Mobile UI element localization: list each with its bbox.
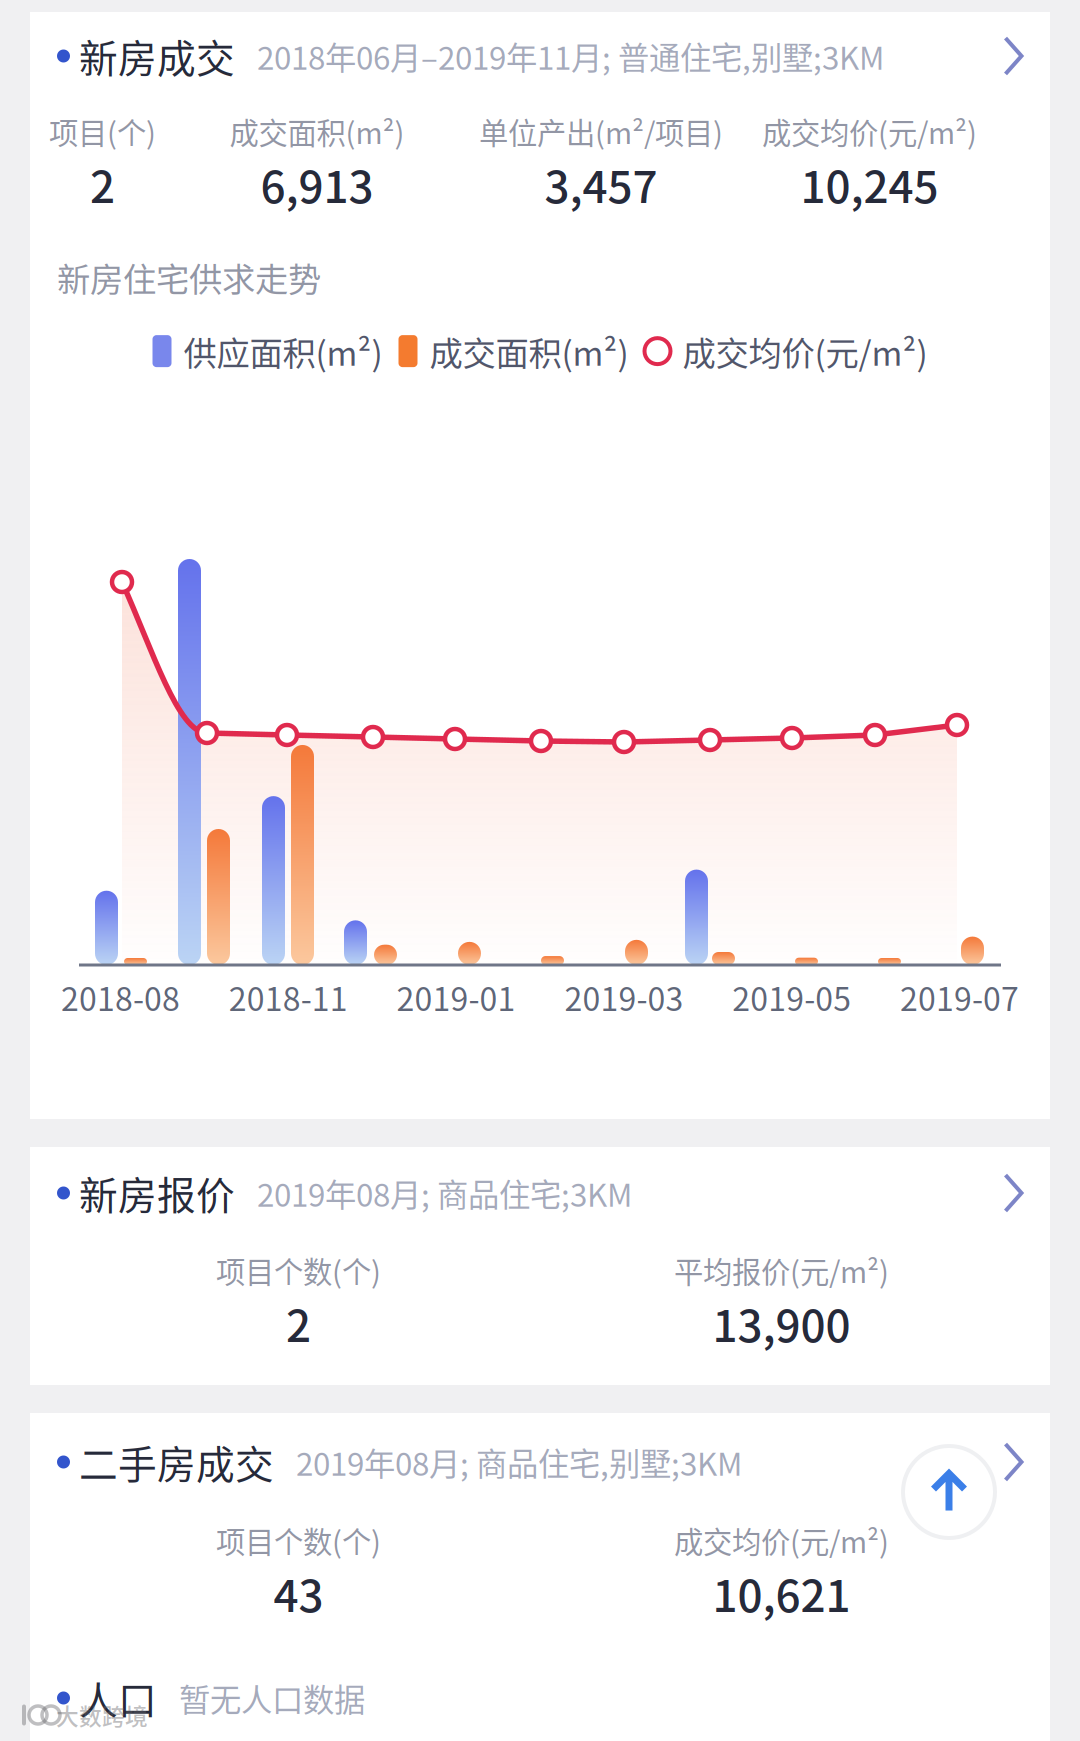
staticText: 单位产出(m²/项目) <box>479 110 723 152</box>
staticText: 13,900 <box>712 1291 850 1355</box>
button[interactable]: 新房报价 <box>57 1165 1023 1209</box>
staticText: 2019年08月; 商品住宅;3KM <box>257 1170 632 1216</box>
staticText: 成交均价(元/m²) <box>682 327 927 375</box>
staticText: 项目个数(个) <box>216 1519 381 1561</box>
button[interactable]: 人口 <box>57 1670 1023 1714</box>
staticText: 大数跨境 <box>56 1699 148 1731</box>
staticText: 43 <box>273 1561 323 1625</box>
staticText: 3,457 <box>544 152 657 216</box>
button[interactable]: 新房成交 <box>57 28 1023 72</box>
staticText: 平均报价(元/m²) <box>674 1249 889 1291</box>
staticText: 2019年08月; 商品住宅,别墅;3KM <box>296 1439 742 1485</box>
staticText: 6,913 <box>260 152 373 216</box>
staticText: 项目(个) <box>49 110 156 152</box>
staticText: 10,245 <box>800 152 938 216</box>
staticText: 成交均价(元/m²) <box>762 110 977 152</box>
staticText: 新房成交 <box>79 28 235 84</box>
staticText: 2 <box>286 1291 311 1355</box>
staticText: 人口 <box>79 1670 157 1726</box>
staticText: 2019-07 <box>900 974 1019 1020</box>
staticText: 成交均价(元/m²) <box>674 1519 889 1561</box>
staticText: 2019-03 <box>564 974 683 1020</box>
staticText: 2 <box>90 152 115 216</box>
button[interactable]: 二手房成交 <box>57 1434 1023 1478</box>
button[interactable]: 回到顶部 <box>901 1444 997 1540</box>
staticText: 暂无人口数据 <box>179 1675 365 1721</box>
staticText: 2019-01 <box>397 974 516 1020</box>
staticText: 新房住宅供求走势 <box>57 253 321 291</box>
staticText: 成交面积(m²) <box>229 110 404 152</box>
staticText: 项目个数(个) <box>216 1249 381 1291</box>
staticText: 2019-05 <box>732 974 851 1020</box>
staticText: 二手房成交 <box>79 1434 274 1490</box>
staticText: 10,621 <box>712 1561 850 1625</box>
staticText: 新房报价 <box>79 1165 235 1221</box>
staticText: 2018-11 <box>229 974 348 1020</box>
staticText: 供应面积(m²) <box>183 327 382 375</box>
staticText: 2018-08 <box>61 974 180 1020</box>
staticText: 2018年06月–2019年11月; 普通住宅,别墅;3KM <box>257 33 884 79</box>
staticText: 成交面积(m²) <box>429 327 628 375</box>
